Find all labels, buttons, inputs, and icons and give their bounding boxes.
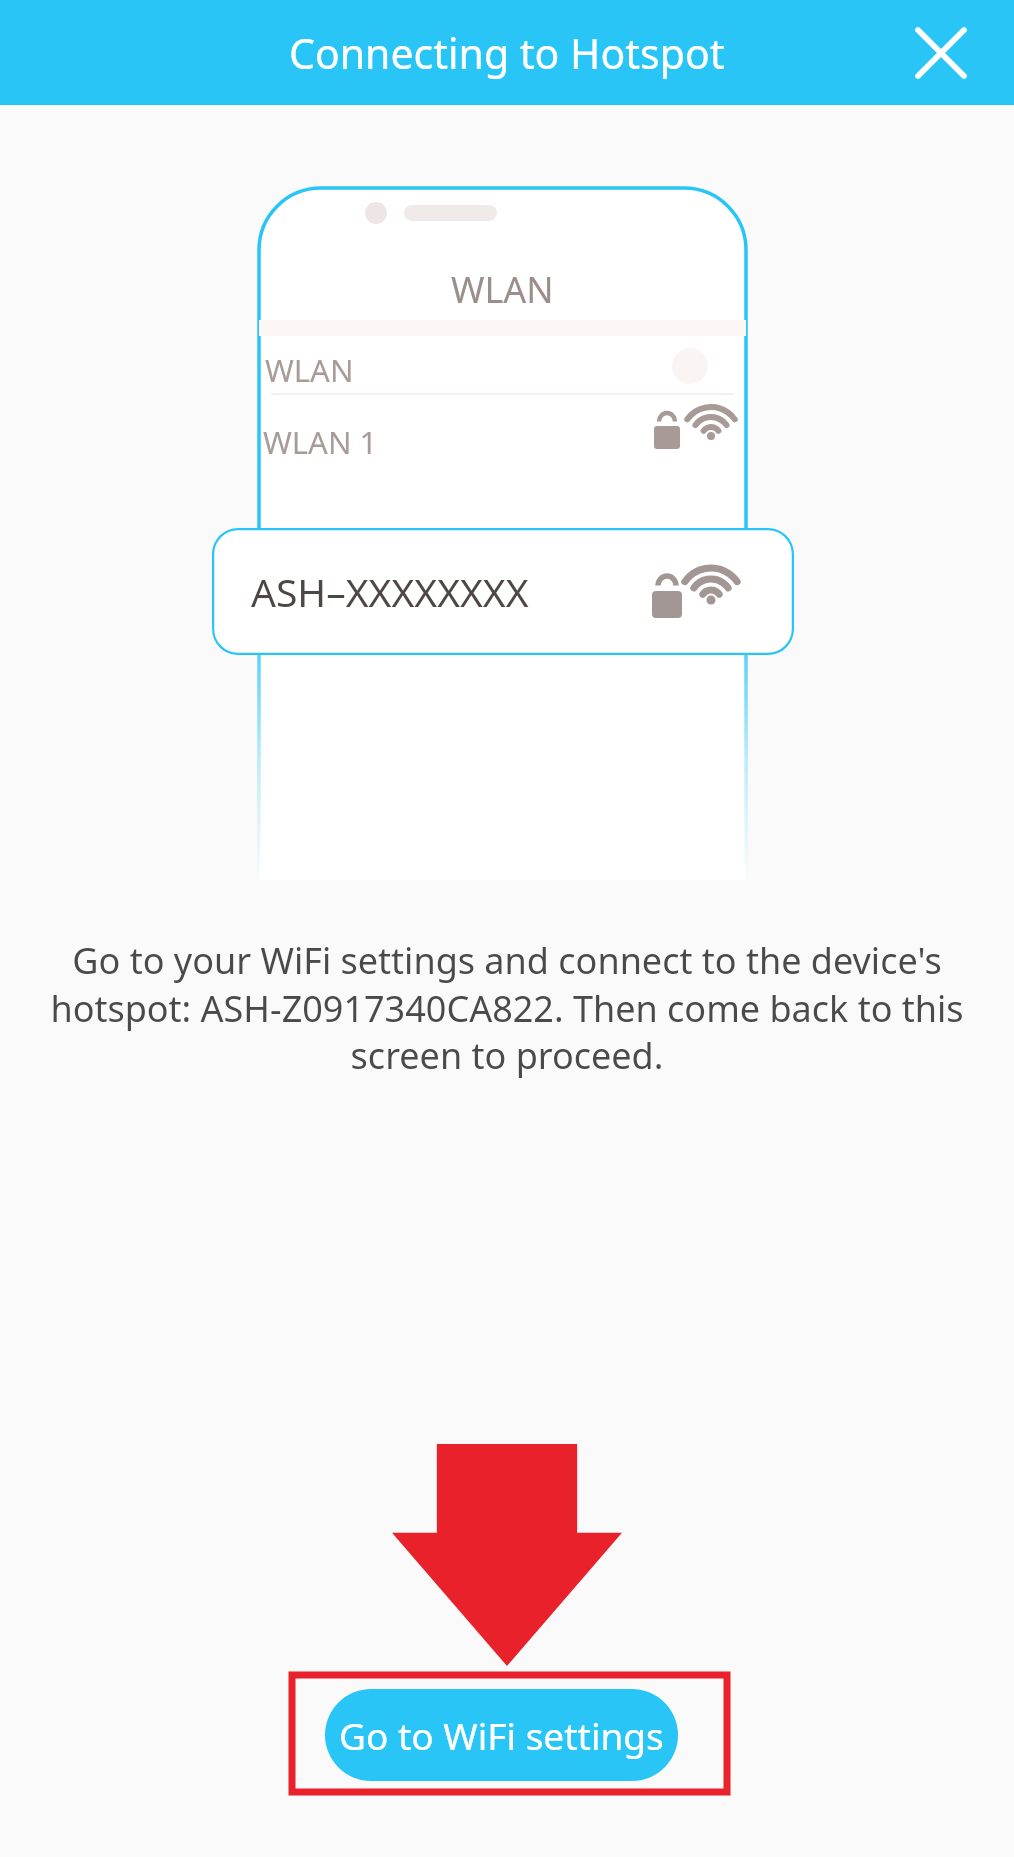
staticText: WLAN 2 xyxy=(263,546,378,588)
staticText: WLAN 1 xyxy=(263,421,378,463)
button[interactable]: ASH–XXXXXXXX xyxy=(212,528,794,655)
button[interactable]: Go to WiFi settings xyxy=(325,1689,678,1781)
staticText: Go to your WiFi settings and connect to … xyxy=(36,936,978,1079)
staticText: Connecting to Hotspot xyxy=(289,25,725,81)
staticText: WLAN xyxy=(265,349,354,391)
staticText: WLAN xyxy=(451,265,554,314)
staticText: Go to WiFi settings xyxy=(339,1710,664,1760)
staticText: ASH–XXXXXXXX xyxy=(251,565,529,618)
button[interactable]: Close xyxy=(891,3,991,103)
